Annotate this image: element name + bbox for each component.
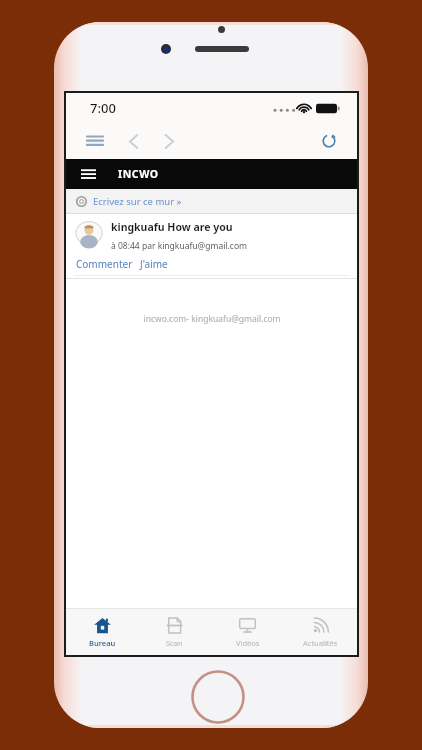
button[interactable]: Menu <box>80 126 110 156</box>
button[interactable]: Actualités <box>284 609 357 655</box>
button[interactable]: Scan <box>138 609 211 655</box>
button[interactable]: Forward <box>154 126 184 156</box>
staticText: Bureau <box>89 638 116 648</box>
button[interactable]: Ecrivez sur ce mur » <box>66 189 357 213</box>
staticText: 7:00 <box>90 99 116 117</box>
button[interactable]: Reload <box>315 127 343 155</box>
button[interactable]: Home <box>190 669 246 725</box>
button[interactable]: Vidéos <box>211 609 284 655</box>
staticText: INCWO <box>118 167 159 181</box>
staticText: Actualités <box>303 638 338 648</box>
staticText: Scan <box>166 638 183 648</box>
staticText: incwo.com- kingkuafu@gmail.com <box>143 313 281 325</box>
button[interactable]: Commenter <box>76 257 133 271</box>
button[interactable]: Back <box>118 126 148 156</box>
staticText: Ecrivez sur ce mur » <box>93 195 182 208</box>
button[interactable]: J'aime <box>140 257 168 271</box>
staticText: Vidéos <box>236 638 260 648</box>
staticText: kingkuafu How are you <box>111 220 233 234</box>
staticText: à 08:44 par kingkuafu@gmail.com <box>111 240 248 252</box>
staticText: Commenter <box>76 257 133 271</box>
button[interactable]: Bureau <box>66 609 138 655</box>
staticText: J'aime <box>140 257 168 271</box>
button[interactable]: Open navigation <box>74 160 102 188</box>
